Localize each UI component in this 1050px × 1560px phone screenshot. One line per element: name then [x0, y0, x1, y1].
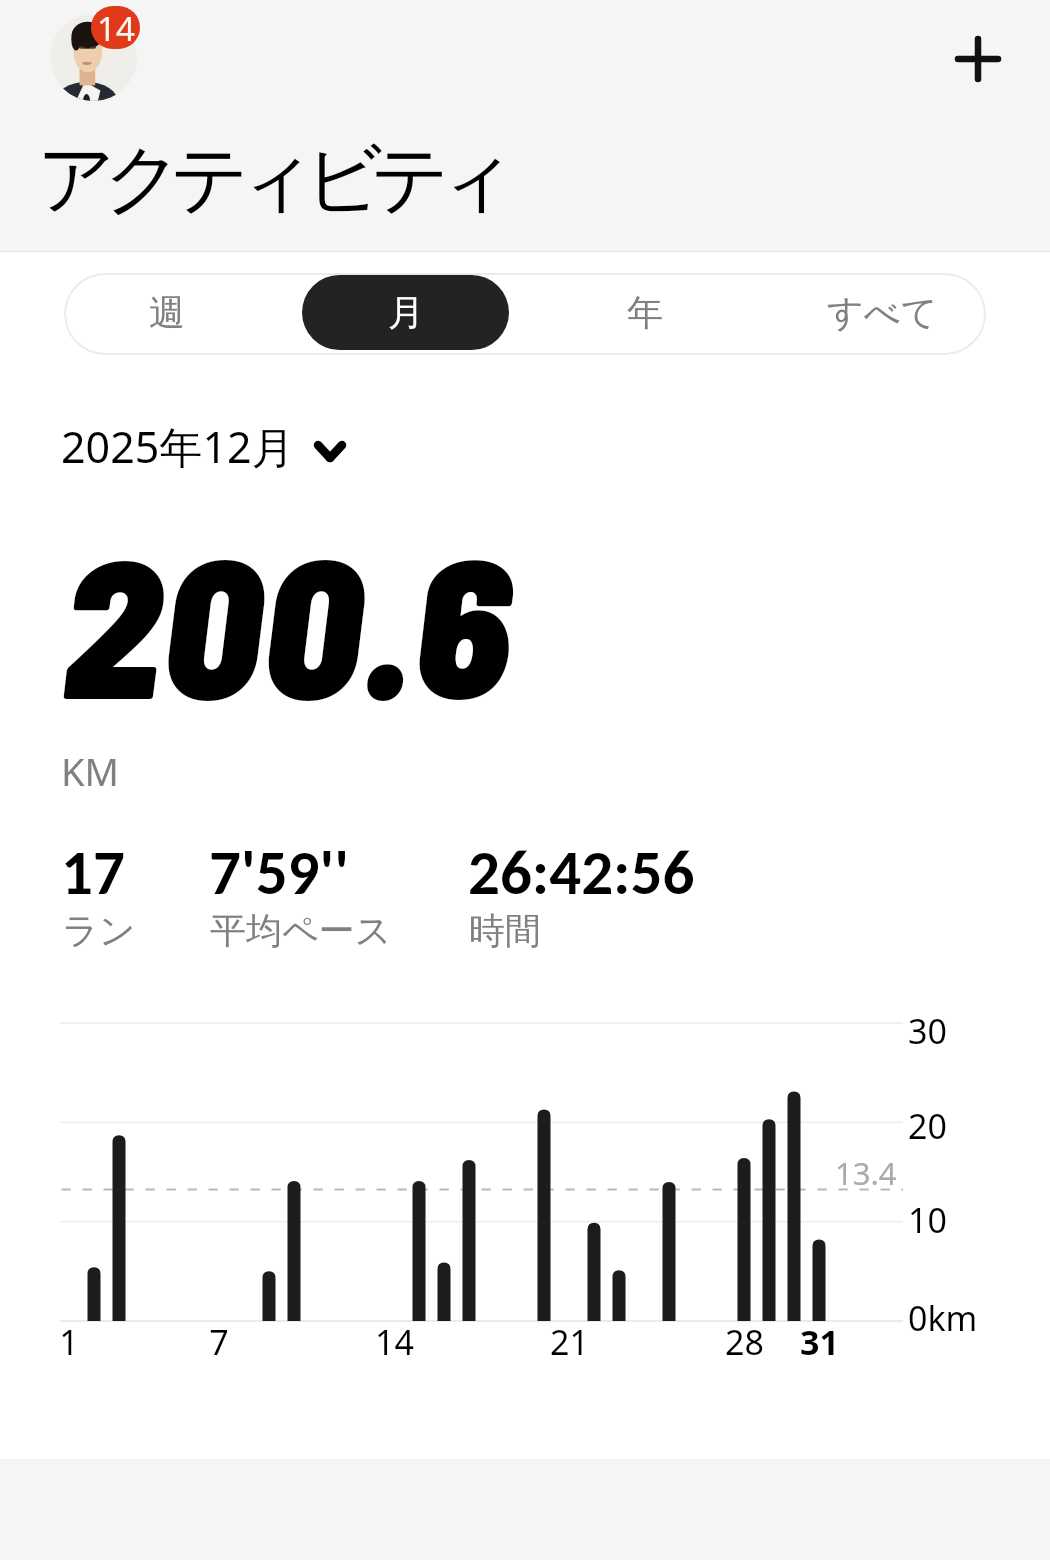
button[interactable]: 週 — [64, 273, 286, 355]
staticText: 時間 — [469, 908, 541, 953]
staticText: 1 — [59, 1319, 79, 1365]
staticText: 31 — [800, 1319, 839, 1365]
staticText: 2025年12月 — [61, 417, 295, 476]
button[interactable]: すべて — [764, 273, 987, 355]
staticText: すべて — [827, 290, 938, 335]
staticText: 14 — [97, 6, 135, 49]
staticText: 26:42:56 — [468, 834, 695, 911]
staticText: 週 — [149, 290, 185, 335]
button[interactable]: Add activity — [930, 11, 1026, 107]
button[interactable]: 2025年12月 — [61, 417, 351, 476]
staticText: 200.6 — [62, 504, 513, 738]
staticText: 月 — [388, 290, 424, 335]
staticText: 0km — [908, 1295, 978, 1341]
staticText: 21 — [550, 1319, 589, 1365]
button[interactable]: Profile — [50, 14, 137, 101]
button[interactable]: 月 — [286, 273, 525, 355]
staticText: 20 — [908, 1103, 947, 1149]
staticText: 7 — [209, 1319, 229, 1365]
staticText: ラン — [62, 908, 136, 953]
button[interactable]: 年 — [525, 273, 763, 355]
staticText: 17 — [61, 834, 125, 911]
staticText: 7'59'' — [209, 834, 349, 911]
staticText: 年 — [627, 290, 663, 335]
staticText: KM — [61, 745, 119, 797]
staticText: 30 — [908, 1008, 947, 1054]
staticText: 10 — [908, 1197, 947, 1243]
staticText: 14 — [375, 1319, 414, 1365]
staticText: 平均ペース — [210, 908, 392, 953]
staticText: 28 — [725, 1319, 764, 1365]
staticText: 13.4 — [835, 1152, 897, 1194]
staticText: アクティビティ — [37, 131, 505, 228]
